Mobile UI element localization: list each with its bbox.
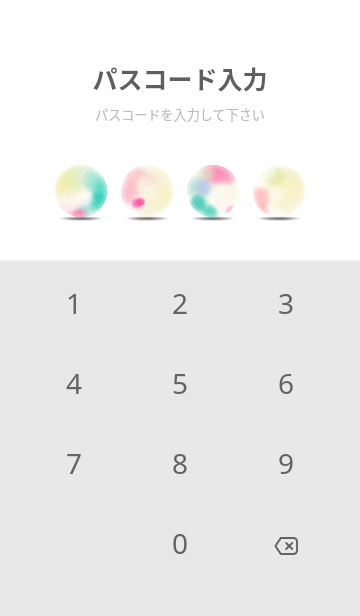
- staticText: 3: [278, 284, 295, 322]
- button[interactable]: Delete: [233, 503, 339, 583]
- button[interactable]: 1: [21, 263, 127, 343]
- staticText: パスコード入力: [92, 60, 268, 96]
- staticText: 4: [66, 364, 83, 402]
- staticText: 0: [172, 524, 189, 562]
- button[interactable]: 9: [233, 423, 339, 503]
- staticText: パスコードを入力して下さい: [95, 105, 265, 124]
- button[interactable]: 2: [127, 263, 233, 343]
- staticText: 8: [172, 444, 189, 482]
- button[interactable]: 0: [127, 503, 233, 583]
- button[interactable]: 6: [233, 343, 339, 423]
- button[interactable]: 5: [127, 343, 233, 423]
- staticText: 1: [66, 284, 83, 322]
- button[interactable]: 4: [21, 343, 127, 423]
- staticText: 9: [278, 444, 295, 482]
- button[interactable]: 8: [127, 423, 233, 503]
- button[interactable]: Delete: [262, 519, 310, 567]
- staticText: 7: [66, 444, 83, 482]
- staticText: 2: [172, 284, 189, 322]
- staticText: 6: [278, 364, 295, 402]
- staticText: 5: [172, 364, 189, 402]
- button[interactable]: 7: [21, 423, 127, 503]
- button[interactable]: 3: [233, 263, 339, 343]
